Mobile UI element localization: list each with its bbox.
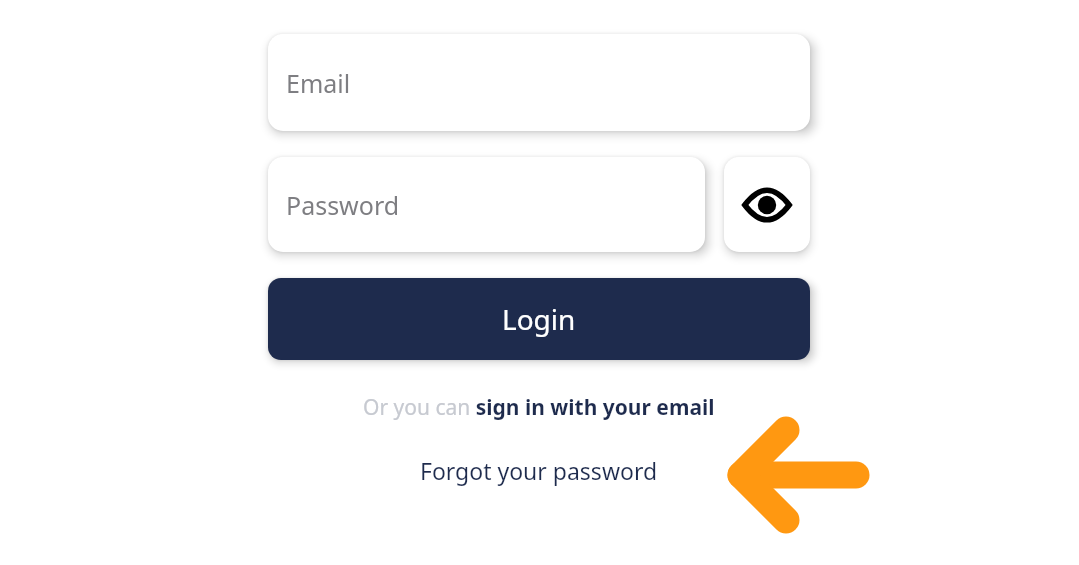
button[interactable]: Forgot your password	[268, 452, 810, 488]
button[interactable]: Or you can sign in with your email	[268, 390, 810, 424]
button[interactable]: Show password	[724, 157, 810, 252]
staticText: Or you can sign in with your email	[363, 393, 715, 422]
button[interactable]: Email	[268, 34, 810, 131]
staticText: Email	[286, 66, 351, 100]
button[interactable]: Password	[268, 157, 705, 252]
other: Arrow	[726, 429, 868, 521]
staticText: Forgot your password	[420, 455, 658, 486]
staticText: Login	[502, 300, 576, 338]
staticText: Password	[286, 188, 400, 222]
button[interactable]: Login	[268, 278, 810, 360]
